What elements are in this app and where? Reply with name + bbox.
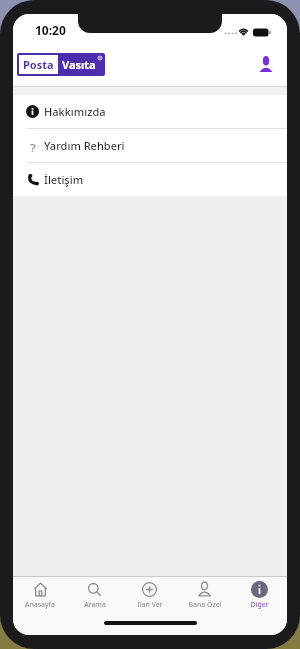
button[interactable]: Anasayfa xyxy=(13,577,67,613)
button[interactable]: Hakkımızda xyxy=(13,95,287,128)
button[interactable]: Diğer xyxy=(232,577,287,613)
button[interactable]: Bana Özel xyxy=(177,577,232,613)
staticText: Vasıta xyxy=(62,57,96,72)
staticText: Bana Özel xyxy=(188,600,222,610)
staticText: İlan Ver xyxy=(137,600,163,610)
button[interactable]: ? xyxy=(13,129,287,162)
button[interactable]: Posta xyxy=(17,53,105,76)
staticText: İletişim xyxy=(44,172,84,187)
staticText: Diğer xyxy=(250,600,269,610)
staticText: Yardım Rehberi xyxy=(44,138,125,153)
staticText: Anasayfa xyxy=(25,600,55,610)
staticText: Posta xyxy=(23,57,54,72)
button[interactable]: İletişim xyxy=(13,163,287,196)
button[interactable]: İlan Ver xyxy=(122,577,177,613)
staticText: ? xyxy=(30,139,36,152)
staticText: Hakkımızda xyxy=(44,104,106,119)
button[interactable]: Arama xyxy=(67,577,122,613)
staticText: 10:20 xyxy=(35,22,66,38)
staticText: Arama xyxy=(84,600,106,610)
button[interactable] xyxy=(251,49,281,79)
